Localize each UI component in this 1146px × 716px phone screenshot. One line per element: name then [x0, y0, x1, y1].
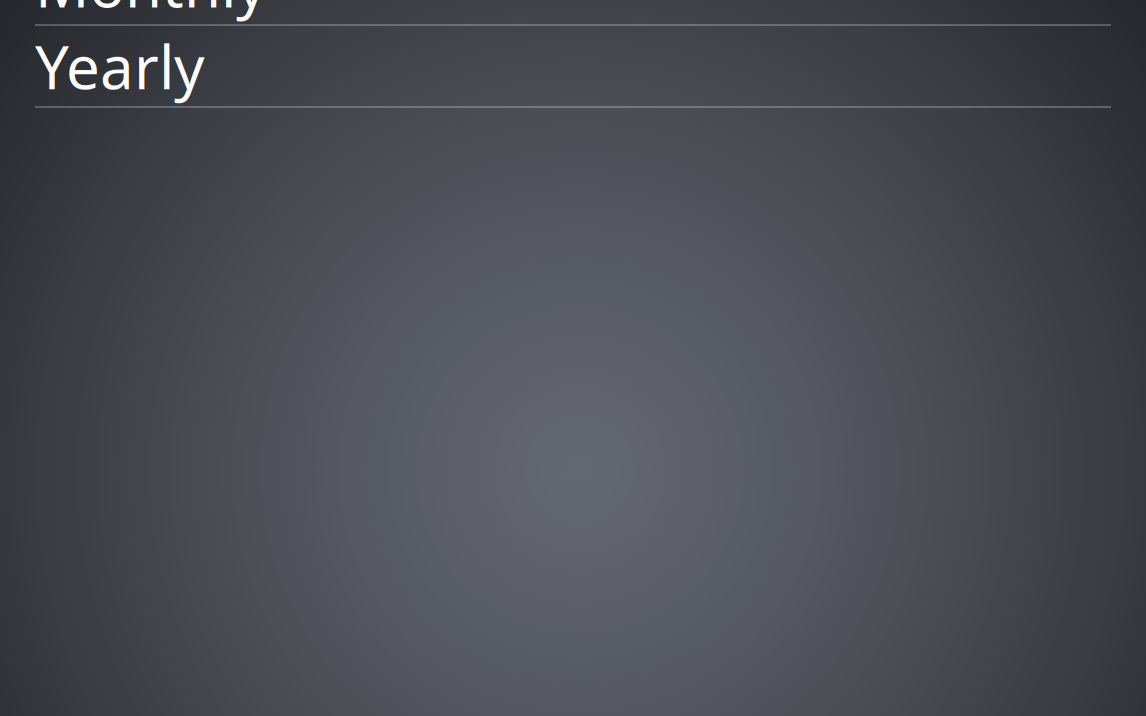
- staticText: Monthly: [35, 0, 267, 24]
- button[interactable]: Monthly: [0, 0, 1146, 24]
- button[interactable]: Yearly: [0, 26, 1146, 106]
- staticText: Yearly: [35, 26, 205, 106]
